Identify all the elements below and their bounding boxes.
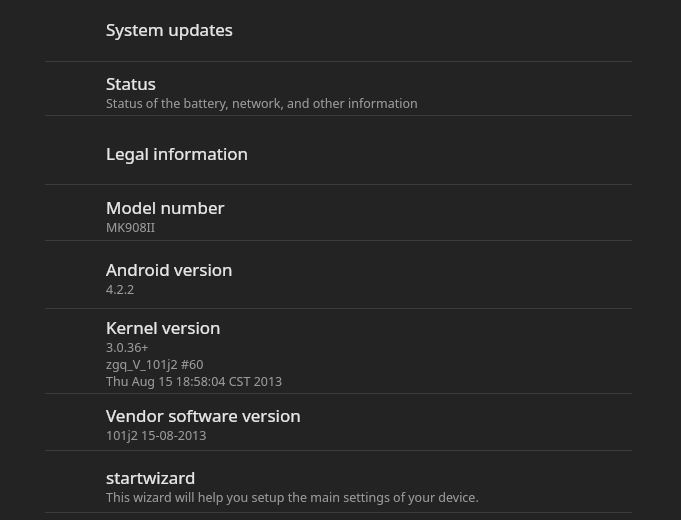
button[interactable]: startwizard <box>0 450 681 512</box>
staticText: Kernel version <box>106 316 221 339</box>
staticText: zgq_V_101j2 #60 <box>106 356 204 373</box>
button[interactable]: Model number <box>0 184 681 240</box>
staticText: 4.2.2 <box>106 281 135 298</box>
staticText: startwizard <box>106 466 196 489</box>
staticText: Vendor software version <box>106 404 301 427</box>
staticText: Model number <box>106 196 225 219</box>
button[interactable]: Status <box>0 61 681 115</box>
staticText: Thu Aug 15 18:58:04 CST 2013 <box>106 373 283 390</box>
staticText: Legal information <box>106 142 249 165</box>
button[interactable]: System updates <box>0 0 681 61</box>
button[interactable]: Android version <box>0 240 681 308</box>
staticText: System updates <box>106 18 234 41</box>
staticText: Status of the battery, network, and othe… <box>106 95 418 112</box>
staticText: 3.0.36+ <box>106 339 149 356</box>
button[interactable]: Kernel version <box>0 308 681 393</box>
button[interactable]: Legal information <box>0 115 681 184</box>
staticText: Android version <box>106 258 233 281</box>
staticText: Status <box>106 72 156 95</box>
staticText: 101j2 15-08-2013 <box>106 427 207 444</box>
button[interactable]: Vendor software version <box>0 393 681 450</box>
staticText: MK908II <box>106 219 156 236</box>
staticText: This wizard will help you setup the main… <box>106 489 479 506</box>
